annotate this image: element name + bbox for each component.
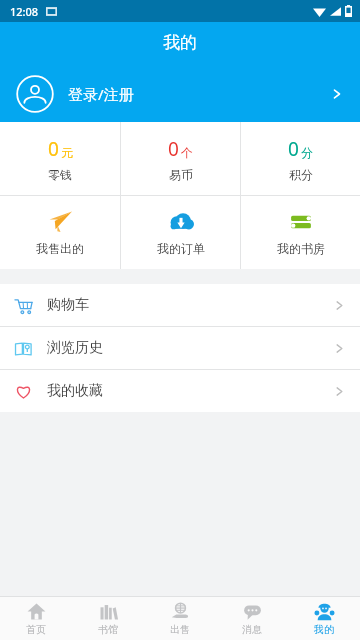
button[interactable]: 0 xyxy=(241,122,360,195)
staticText: 首页 xyxy=(26,623,46,636)
button[interactable]: Browsing history xyxy=(0,327,360,369)
staticText: 积分 xyxy=(289,167,313,182)
button[interactable]: 书馆 xyxy=(72,597,144,640)
staticText: 易币 xyxy=(169,167,193,182)
button[interactable]: 我的订单 xyxy=(121,196,240,269)
staticText: 我的书房 xyxy=(277,241,325,256)
staticText: 0 xyxy=(168,136,179,162)
staticText: 个 xyxy=(181,145,193,160)
staticText: 登录/注册 xyxy=(68,84,134,104)
button[interactable]: 0 xyxy=(121,122,240,195)
staticText: 消息 xyxy=(242,623,262,636)
button[interactable]: 登录/注册 xyxy=(0,66,360,122)
staticText: 分 xyxy=(301,145,313,160)
staticText: 0 xyxy=(288,136,299,162)
other: Shopping cart xyxy=(14,296,33,315)
staticText: 我的收藏 xyxy=(47,382,103,400)
staticText: 0 xyxy=(48,136,59,162)
other: My favorites xyxy=(14,382,33,401)
staticText: 元 xyxy=(61,145,73,160)
other: Browsing history xyxy=(14,339,33,358)
staticText: 浏览历史 xyxy=(47,339,103,357)
button[interactable]: Shopping cart xyxy=(0,284,360,326)
staticText: 购物车 xyxy=(47,296,89,314)
button[interactable]: 我售出的 xyxy=(0,196,120,269)
staticText: 出售 xyxy=(170,623,190,636)
button[interactable]: 0 xyxy=(0,122,120,195)
button[interactable]: 消息 xyxy=(216,597,288,640)
staticText: 书馆 xyxy=(98,623,118,636)
button[interactable]: 出售 xyxy=(144,597,216,640)
button[interactable]: 我的书房 xyxy=(241,196,360,269)
staticText: 我售出的 xyxy=(36,241,84,256)
staticText: 我的 xyxy=(314,623,334,636)
staticText: 我的 xyxy=(163,32,197,53)
button[interactable]: My favorites xyxy=(0,370,360,412)
staticText: 12:08 xyxy=(10,4,39,19)
button[interactable]: 我的 xyxy=(288,597,360,640)
staticText: 零钱 xyxy=(48,167,72,182)
staticText: 我的订单 xyxy=(157,241,205,256)
button[interactable]: 首页 xyxy=(0,597,72,640)
